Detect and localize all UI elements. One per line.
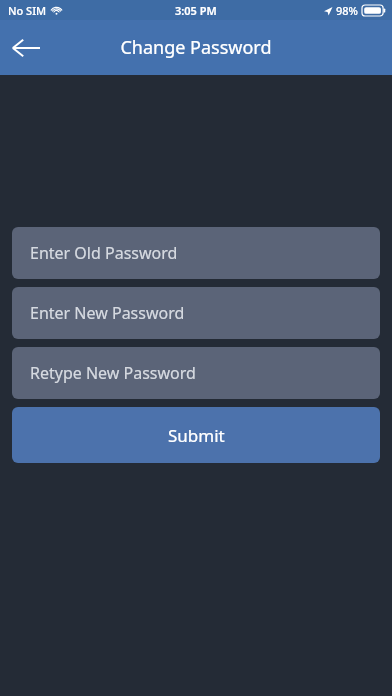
staticText: No SIM — [8, 3, 47, 18]
staticText: Enter Old Password — [30, 242, 178, 264]
button[interactable]: Retype New Password — [12, 347, 380, 399]
staticText: Change Password — [120, 35, 272, 60]
staticText: 98% — [336, 3, 358, 18]
staticText: Submit — [168, 424, 225, 447]
button[interactable]: Enter New Password — [12, 287, 380, 339]
staticText: 3:05 PM — [175, 3, 217, 18]
staticText: Enter New Password — [30, 302, 185, 324]
staticText: Retype New Password — [30, 362, 196, 384]
button[interactable]: Enter Old Password — [12, 227, 380, 279]
button[interactable]: Back — [0, 22, 52, 74]
button[interactable]: Submit — [12, 407, 380, 463]
